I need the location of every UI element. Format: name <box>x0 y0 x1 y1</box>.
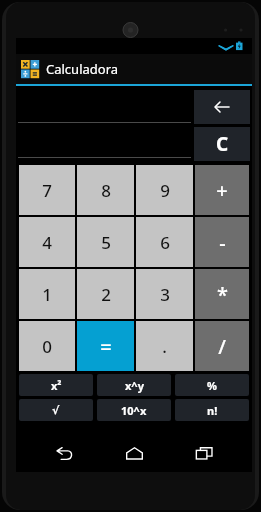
staticText: 6 <box>160 231 170 254</box>
staticText: % <box>207 378 217 393</box>
staticText: Calculadora <box>46 60 119 78</box>
staticText: 0 <box>42 335 52 358</box>
button[interactable]: + <box>195 165 249 215</box>
button[interactable]: C <box>194 127 250 161</box>
button[interactable]: = <box>77 321 134 371</box>
staticText: √ <box>52 404 60 417</box>
staticText: 3 <box>160 283 170 306</box>
button[interactable]: Backspace <box>194 90 250 124</box>
button[interactable]: √ <box>19 399 93 421</box>
staticText: + <box>216 177 228 204</box>
staticText: - <box>219 229 226 256</box>
staticText: / <box>218 333 226 360</box>
staticText: C <box>216 131 229 157</box>
button[interactable]: Home <box>112 436 156 470</box>
staticText: 8 <box>101 179 111 202</box>
staticText: 10^x <box>121 403 147 418</box>
button[interactable]: 5 <box>77 217 134 267</box>
staticText: 5 <box>101 231 111 254</box>
button[interactable]: 3 <box>136 269 193 319</box>
staticText: x^y <box>125 378 144 393</box>
button[interactable]: - <box>195 217 249 267</box>
button[interactable]: * <box>195 269 249 319</box>
button[interactable]: x² <box>19 374 93 396</box>
button[interactable]: 8 <box>77 165 134 215</box>
button[interactable]: / <box>195 321 249 371</box>
staticText: 1 <box>42 283 52 306</box>
button[interactable]: 4 <box>19 217 75 267</box>
staticText: * <box>217 281 228 308</box>
button[interactable]: n! <box>175 399 249 421</box>
button[interactable]: 7 <box>19 165 75 215</box>
staticText: 7 <box>42 179 52 202</box>
staticText: 2 <box>101 283 111 306</box>
staticText: x² <box>51 378 62 393</box>
staticText: 9 <box>160 179 170 202</box>
button[interactable]: 10^x <box>97 399 171 421</box>
button[interactable]: 0 <box>19 321 75 371</box>
button[interactable]: Back <box>42 436 86 470</box>
button[interactable]: 6 <box>136 217 193 267</box>
staticText: n! <box>207 403 218 418</box>
button[interactable]: . <box>136 321 193 371</box>
staticText: = <box>100 333 112 360</box>
button[interactable]: x^y <box>97 374 171 396</box>
button[interactable]: 2 <box>77 269 134 319</box>
button[interactable]: Recent apps <box>182 436 226 470</box>
staticText: . <box>162 335 167 358</box>
button[interactable]: % <box>175 374 249 396</box>
staticText: 4 <box>42 231 52 254</box>
button[interactable]: 1 <box>19 269 75 319</box>
button[interactable]: 9 <box>136 165 193 215</box>
